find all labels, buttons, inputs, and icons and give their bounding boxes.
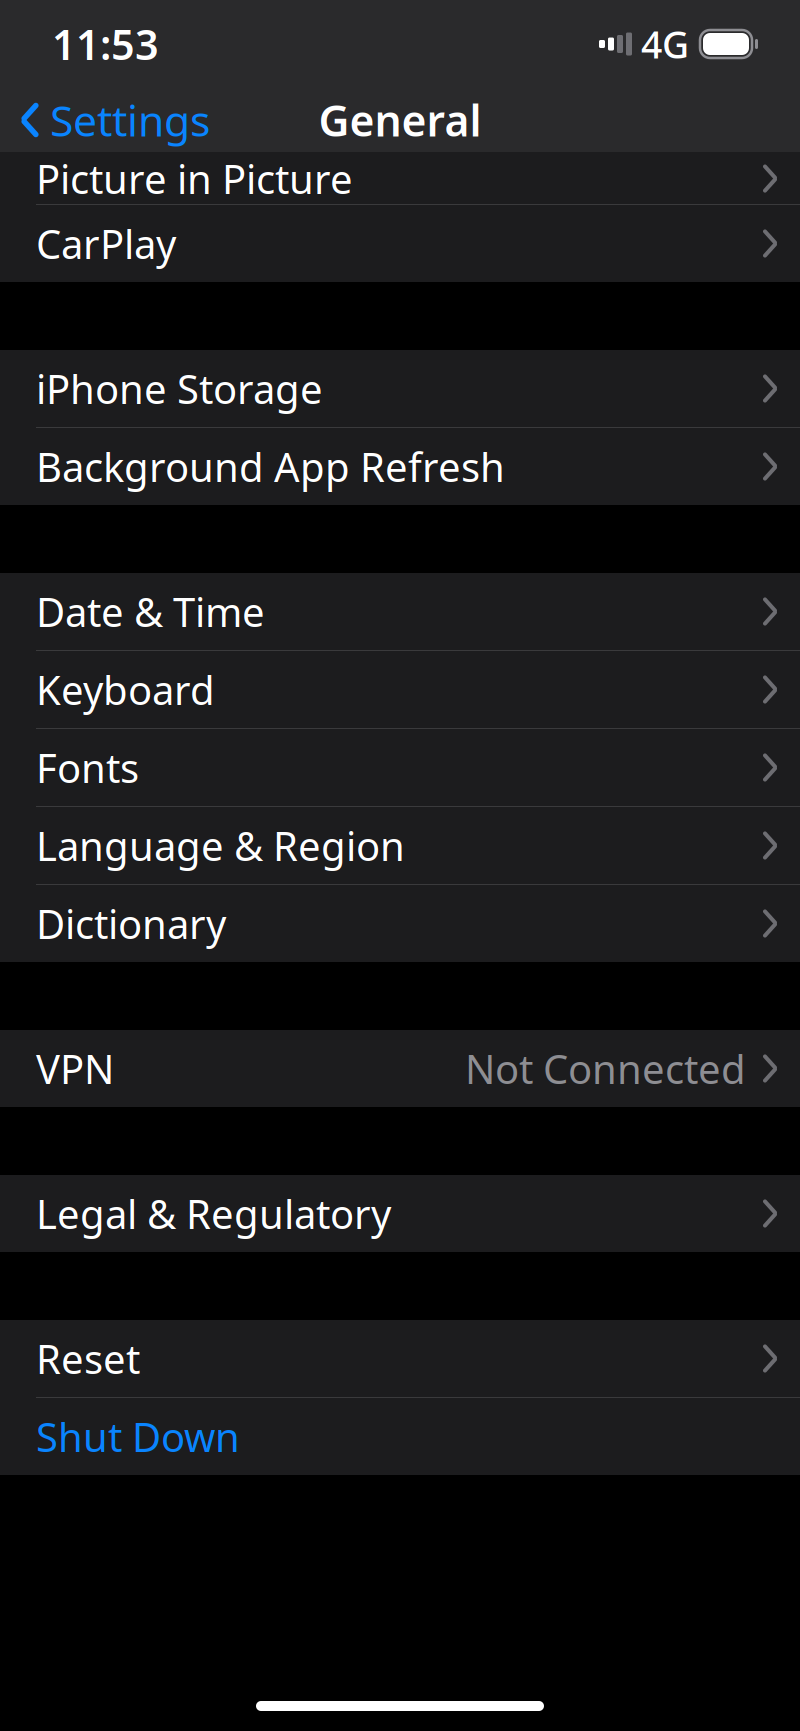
staticText: Background App Refresh — [36, 440, 505, 493]
staticText: Keyboard — [36, 663, 215, 716]
button[interactable]: Fonts — [0, 729, 800, 806]
button[interactable]: Picture in Picture — [0, 152, 800, 204]
staticText: CarPlay — [36, 217, 176, 270]
staticText: Dictionary — [36, 897, 226, 950]
button[interactable]: Settings — [0, 88, 224, 152]
button[interactable]: iPhone Storage — [0, 350, 800, 427]
button[interactable]: Legal & Regulatory — [0, 1175, 800, 1252]
staticText: Legal & Regulatory — [36, 1187, 391, 1240]
staticText: Fonts — [36, 741, 139, 794]
staticText: Shut Down — [36, 1410, 240, 1463]
staticText: General — [318, 92, 481, 148]
staticText: 11:53 — [52, 17, 159, 71]
staticText: Not Connected — [465, 1042, 746, 1095]
button[interactable]: Reset — [0, 1320, 800, 1397]
staticText: Reset — [36, 1332, 140, 1385]
button[interactable]: CarPlay — [0, 205, 800, 282]
staticText: Picture in Picture — [36, 152, 353, 205]
button[interactable]: Shut Down — [0, 1398, 800, 1475]
button[interactable]: VPN — [0, 1030, 800, 1107]
button[interactable]: Date & Time — [0, 573, 800, 650]
button[interactable]: Language & Region — [0, 807, 800, 884]
staticText: 4G — [641, 19, 689, 69]
staticText: VPN — [36, 1042, 114, 1095]
button[interactable]: Background App Refresh — [0, 428, 800, 505]
button[interactable]: Keyboard — [0, 651, 800, 728]
staticText: Date & Time — [36, 585, 265, 638]
staticText: Language & Region — [36, 819, 405, 872]
staticText: Settings — [50, 92, 210, 148]
staticText: iPhone Storage — [36, 362, 323, 415]
button[interactable]: Dictionary — [0, 885, 800, 962]
